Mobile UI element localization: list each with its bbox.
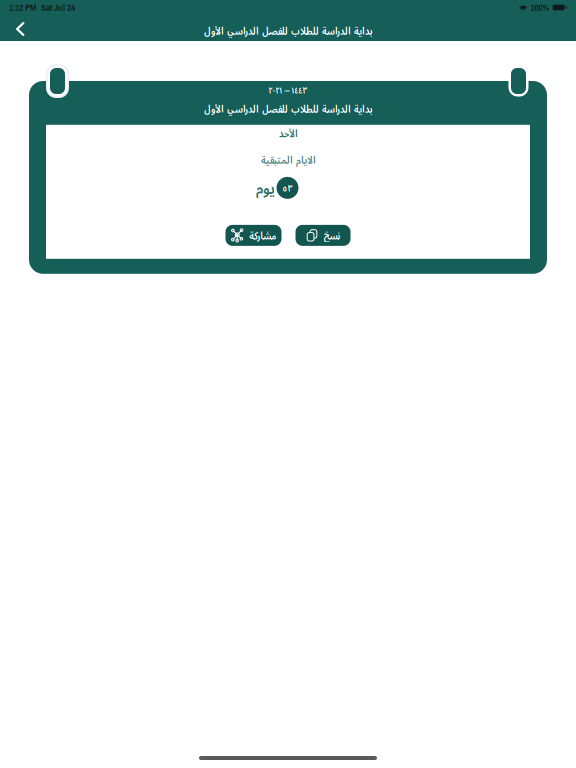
staticText: بداية الدراسة للطلاب للفصل الدراسي الأول xyxy=(203,23,372,38)
staticText: الايام المتبقية xyxy=(260,152,315,167)
staticText: نسخ xyxy=(323,228,340,243)
staticText: 1:12 PM xyxy=(9,1,36,14)
staticText: الأحد xyxy=(278,126,297,140)
staticText: يوم xyxy=(255,177,274,199)
staticText: 100% xyxy=(531,1,550,14)
button[interactable]: نسخ xyxy=(295,225,350,246)
staticText: بداية الدراسة للطلاب للفصل الدراسي الأول xyxy=(203,101,372,116)
button[interactable]: مشاركة xyxy=(225,225,281,246)
staticText: مشاركة xyxy=(249,228,276,243)
staticText: ١٤٤٣ – ٢٠٢١ xyxy=(268,84,307,96)
staticText: Sat Jul 24 xyxy=(41,1,75,14)
staticText: ٥٣ xyxy=(282,181,292,194)
button[interactable]: Back xyxy=(0,20,38,41)
